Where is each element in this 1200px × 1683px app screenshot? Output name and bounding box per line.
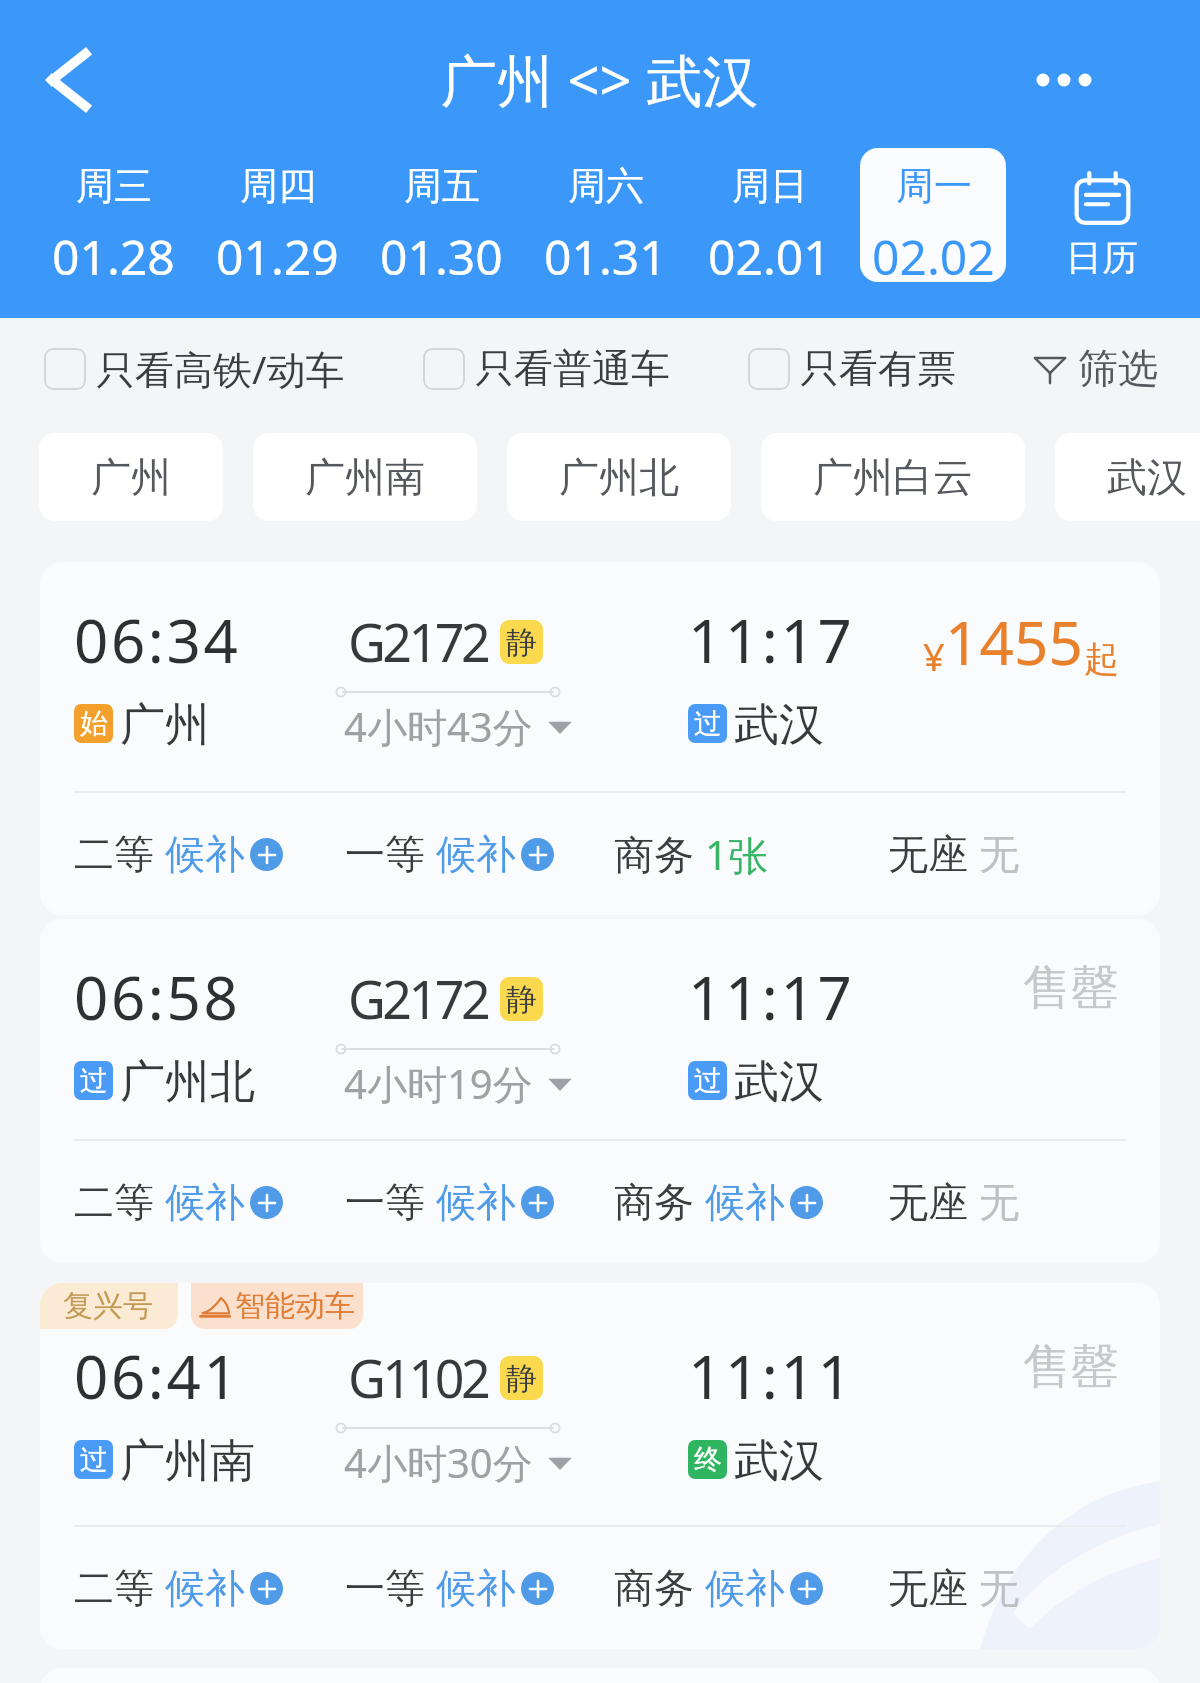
staticText: 候补 [436, 829, 516, 879]
button[interactable]: 筛选 [1032, 343, 1158, 393]
button[interactable]: 广州 [39, 433, 223, 521]
staticText: 广州 <> 武汉 [441, 41, 759, 117]
button[interactable]: 商务 [614, 1177, 823, 1227]
staticText: 周日 [732, 162, 808, 210]
staticText: 广州 [91, 452, 171, 502]
button[interactable]: 二等 [74, 1177, 283, 1227]
staticText: 06:58 [74, 956, 241, 1038]
button[interactable]: 无座 [888, 1563, 1019, 1613]
staticText: 02.02 [872, 224, 995, 282]
staticText: 一等 [345, 1177, 425, 1227]
staticText: 终 [694, 1442, 722, 1477]
staticText: 候补 [705, 1177, 785, 1227]
staticText: 武汉 [734, 1054, 824, 1111]
staticText: 4小时30分 [344, 1435, 533, 1490]
staticText: 武汉 [734, 1433, 824, 1490]
staticText: 候补 [165, 1563, 245, 1613]
button[interactable]: 只看普通车 [423, 344, 670, 393]
button[interactable]: 商务 [614, 1563, 823, 1613]
button[interactable]: 06:58 [40, 919, 1160, 1263]
staticText: 无座 [888, 1177, 968, 1227]
button[interactable]: 只看高铁/动车 [44, 342, 345, 395]
staticText: 静 [506, 980, 537, 1019]
staticText: 只看有票 [800, 344, 956, 393]
staticText: 无 [979, 829, 1019, 879]
staticText: 售罄 [1023, 1337, 1119, 1397]
button[interactable]: More options [1018, 34, 1110, 126]
staticText: 二等 [74, 829, 154, 879]
staticText: 4小时43分 [344, 699, 533, 754]
button[interactable]: 二等 [74, 1563, 283, 1613]
button[interactable]: 一等 [345, 1563, 554, 1613]
button[interactable]: 二等 [74, 829, 283, 879]
button[interactable]: 无座 [888, 829, 1019, 879]
staticText: 周一 [896, 162, 972, 210]
staticText: 无座 [888, 829, 968, 879]
staticText: 候补 [165, 829, 245, 879]
button[interactable]: 商务 [614, 827, 768, 882]
button[interactable]: 只看有票 [748, 344, 956, 393]
button[interactable]: 周一 [860, 148, 1006, 282]
button[interactable]: 广州北 [507, 433, 731, 521]
staticText: 11:17 [688, 599, 855, 681]
staticText: 候补 [165, 1177, 245, 1227]
staticText: 01.29 [216, 224, 339, 282]
staticText: 1455 [945, 601, 1084, 683]
button[interactable]: 周日 [696, 148, 842, 282]
button[interactable]: 周五 [368, 148, 514, 282]
button[interactable]: 周四 [204, 148, 350, 282]
button[interactable]: Calendar [1049, 148, 1155, 288]
button[interactable]: 一等 [345, 829, 554, 879]
button[interactable]: 周三 [40, 148, 186, 282]
staticText: 无 [979, 1563, 1019, 1613]
staticText: 一等 [345, 1563, 425, 1613]
staticText: 周五 [404, 162, 480, 210]
staticText: 智能动车 [235, 1287, 355, 1325]
staticText: 过 [80, 1442, 108, 1477]
staticText: 二等 [74, 1177, 154, 1227]
staticText: 复兴号 [63, 1287, 153, 1325]
staticText: 11:17 [688, 956, 855, 1038]
staticText: 1张 [705, 827, 768, 882]
button[interactable]: 周六 [532, 148, 678, 282]
staticText: 06:41 [74, 1335, 241, 1417]
staticText: 武汉 [1107, 452, 1187, 502]
staticText: 静 [506, 623, 537, 662]
staticText: 02.01 [708, 224, 831, 282]
staticText: 01.31 [544, 224, 667, 282]
staticText: 过 [694, 1063, 722, 1098]
staticText: 过 [694, 706, 722, 741]
button[interactable]: 广州白云 [761, 433, 1025, 521]
staticText: 周四 [240, 162, 316, 210]
staticText: 广州白云 [813, 452, 973, 502]
staticText: 售罄 [1023, 958, 1119, 1018]
staticText: 候补 [705, 1563, 785, 1613]
staticText: G2172 [348, 606, 488, 677]
staticText: 周六 [568, 162, 644, 210]
staticText: 4小时19分 [344, 1056, 533, 1111]
button[interactable]: Back [24, 34, 116, 126]
staticText: 只看高铁/动车 [96, 342, 345, 395]
button[interactable]: 武汉 [1055, 433, 1200, 521]
button[interactable]: 06:34 [40, 562, 1160, 915]
staticText: 01.28 [52, 224, 175, 282]
button[interactable]: 广州南 [253, 433, 477, 521]
staticText: 06:34 [74, 599, 241, 681]
staticText: 过 [80, 1063, 108, 1098]
button[interactable]: 无座 [888, 1177, 1019, 1227]
button[interactable]: 复兴号 [40, 1283, 1160, 1649]
staticText: 静 [506, 1359, 537, 1398]
button[interactable]: 一等 [345, 1177, 554, 1227]
staticText: 二等 [74, 1563, 154, 1613]
staticText: 始 [80, 706, 108, 741]
staticText: 周三 [76, 162, 152, 210]
staticText: 日历 [1066, 235, 1138, 280]
staticText: ¥ [923, 630, 945, 682]
staticText: G1102 [348, 1342, 488, 1413]
staticText: 广州南 [305, 452, 425, 502]
staticText: 商务 [614, 830, 694, 880]
staticText: 广州 [120, 697, 210, 754]
staticText: 无座 [888, 1563, 968, 1613]
staticText: 候补 [436, 1177, 516, 1227]
